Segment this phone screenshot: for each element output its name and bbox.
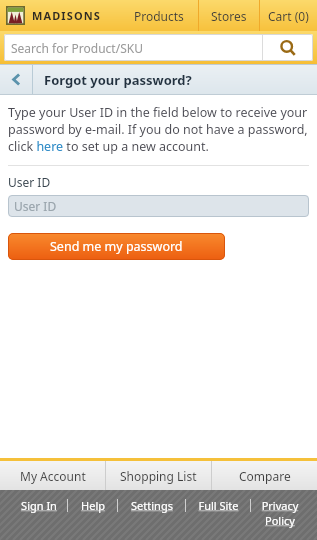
staticText: Compare (239, 468, 291, 484)
staticText: Type your User ID in the field below to … (8, 104, 309, 155)
staticText: Cart (0) (268, 8, 309, 24)
staticText: My Account (20, 468, 86, 484)
button[interactable]: Full Site (186, 498, 250, 513)
staticText: Settings (131, 498, 173, 513)
button[interactable]: Products (120, 0, 198, 31)
staticText: Shopping List (120, 468, 197, 484)
button[interactable]: Send me my password (8, 233, 225, 260)
staticText: Full Site (198, 498, 239, 513)
button[interactable]: My Account (0, 461, 105, 490)
staticText: Forgot your password? (44, 71, 192, 89)
staticText: Help (81, 498, 105, 513)
button[interactable]: Search for Product/SKU (4, 34, 262, 61)
staticText: User ID (8, 174, 51, 190)
button[interactable]: Settings (118, 498, 185, 513)
staticText: Privacy Policy (254, 498, 306, 528)
staticText: Products (134, 8, 184, 24)
button[interactable]: Search (263, 34, 313, 61)
button[interactable]: Stores (199, 0, 259, 31)
button[interactable]: MADISONS (0, 0, 120, 31)
staticText: Stores (211, 8, 247, 24)
button[interactable]: Help (68, 498, 117, 513)
staticText: Sign In (21, 498, 57, 513)
button[interactable]: Back (0, 65, 32, 94)
button[interactable]: Cart (0) (260, 0, 317, 31)
button[interactable]: Shopping List (106, 461, 211, 490)
button[interactable]: Sign In (10, 498, 67, 513)
button[interactable]: Compare (212, 461, 317, 490)
button[interactable]: Privacy Policy (251, 498, 309, 528)
staticText: MADISONS (32, 8, 101, 23)
button[interactable]: User ID (8, 195, 309, 217)
staticText: Search for Product/SKU (11, 40, 143, 56)
staticText: User ID (14, 198, 57, 214)
staticText: Send me my password (50, 238, 183, 255)
